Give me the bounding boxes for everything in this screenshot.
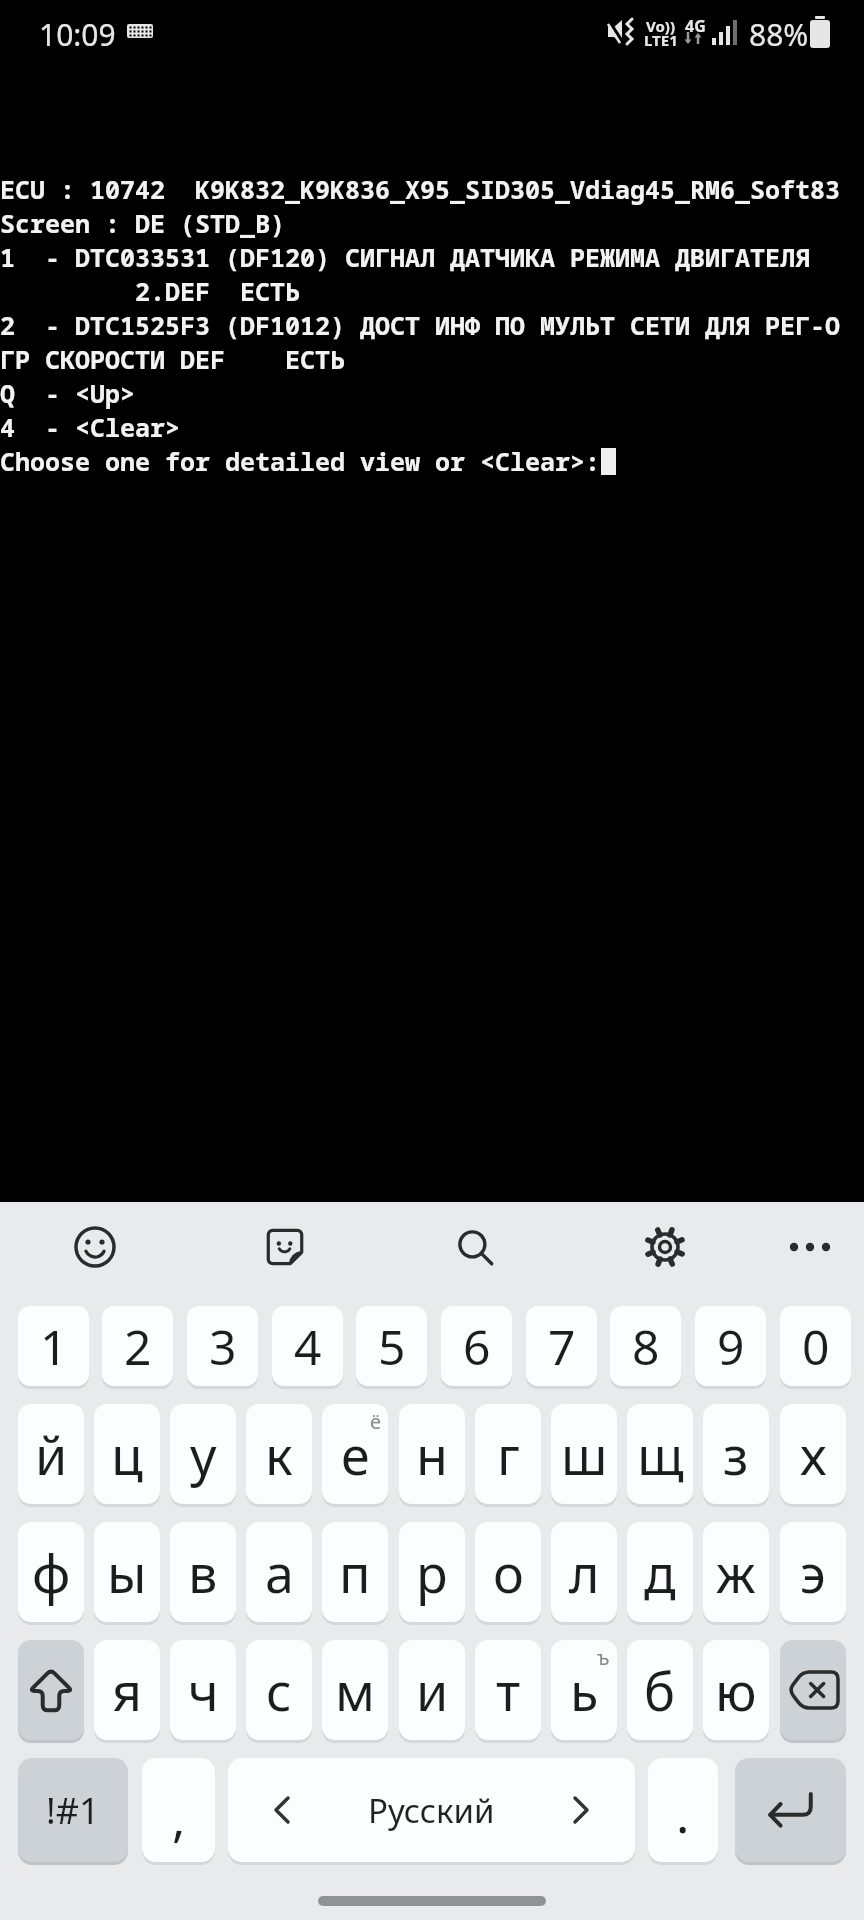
button[interactable]: к [246,1404,312,1504]
button[interactable]: т [475,1640,541,1740]
button[interactable] [735,1758,846,1862]
staticText: х [800,1419,827,1490]
button[interactable]: р [399,1522,465,1622]
staticText: Choose one for detailed view or <Clear>: [0,444,601,478]
button[interactable]: 1 [18,1306,89,1386]
button[interactable]: й [18,1404,84,1504]
staticText: и [416,1655,449,1726]
button[interactable]: 2 [102,1306,173,1386]
button[interactable]: ю [703,1640,769,1740]
button[interactable]: ж [703,1522,769,1622]
button[interactable]: щ [627,1404,693,1504]
staticText: е [341,1419,370,1490]
staticText: Vo)) [646,16,675,36]
button[interactable]: ц [94,1404,160,1504]
staticText: 2 - DTC1525F3 (DF1012) ДОСТ ИНФ ПО МУЛЬТ… [0,308,841,342]
staticText: м [335,1655,375,1726]
button[interactable]: з [703,1404,769,1504]
button[interactable] [263,1225,307,1269]
button[interactable]: п [322,1522,388,1622]
staticText: т [496,1655,521,1726]
button[interactable]: д [627,1522,693,1622]
staticText: Screen : DE (STD_B) [0,206,286,240]
staticText: 1 [40,1314,68,1379]
staticText: щ [637,1419,684,1490]
button[interactable]: ы [94,1522,160,1622]
staticText: 3 [209,1314,237,1379]
button[interactable]: л [551,1522,617,1622]
button[interactable] [780,1640,846,1740]
button[interactable]: ь [551,1640,617,1740]
button[interactable]: м [322,1640,388,1740]
staticText: й [35,1419,68,1490]
staticText: з [723,1419,749,1490]
button[interactable] [73,1225,117,1269]
staticText: ш [561,1419,608,1490]
staticText: ж [716,1537,756,1608]
button[interactable]: ш [551,1404,617,1504]
staticText: ч [188,1655,219,1726]
staticText: л [569,1537,600,1608]
button[interactable]: 0 [780,1306,851,1386]
button[interactable] [643,1225,687,1269]
button[interactable]: а [246,1522,312,1622]
staticText: 4 [294,1314,322,1379]
staticText: ь [570,1655,599,1726]
staticText: ы [107,1537,147,1608]
staticText: . [676,1780,690,1848]
staticText: ц [111,1419,143,1490]
staticText: б [644,1655,676,1726]
staticText: в [188,1537,218,1608]
staticText: 7 [548,1314,576,1379]
button[interactable]: 7 [526,1306,597,1386]
staticText: 88% [749,14,809,55]
button[interactable]: о [475,1522,541,1622]
button[interactable]: 8 [610,1306,681,1386]
button[interactable]: с [246,1640,312,1740]
staticText: н [416,1419,448,1490]
button[interactable]: б [627,1640,693,1740]
staticText: к [265,1419,293,1490]
button[interactable]: Русский [228,1758,635,1862]
staticText: с [266,1655,292,1726]
button[interactable]: н [399,1404,465,1504]
button[interactable]: г [475,1404,541,1504]
staticText: р [416,1537,448,1608]
button[interactable]: у [170,1404,236,1504]
button[interactable]: я [94,1640,160,1740]
button[interactable] [18,1640,84,1740]
button[interactable]: Русский [228,1758,635,1862]
button[interactable]: ф [18,1522,84,1622]
staticText: 2.DEF ЕСТЬ [0,274,301,308]
staticText: э [800,1537,826,1608]
staticText: ECU : 10742 K9K832_K9K836_X95_SID305_Vdi… [0,172,841,206]
staticText: 1 - DTC033531 (DF120) СИГНАЛ ДАТЧИКА РЕЖ… [0,240,811,274]
button[interactable]: !#1 [18,1758,128,1862]
button[interactable]: 6 [441,1306,512,1386]
button[interactable]: . [648,1758,718,1862]
staticText: 4G [685,15,706,37]
button[interactable] [788,1225,832,1269]
staticText: у [190,1419,217,1490]
staticText: п [339,1537,371,1608]
button[interactable]: 5 [356,1306,427,1386]
button[interactable]: ч [170,1640,236,1740]
button[interactable]: х [780,1404,846,1504]
button[interactable]: в [170,1522,236,1622]
staticText: 10:09 [39,14,116,55]
button[interactable] [453,1225,497,1269]
staticText: о [493,1537,524,1608]
button[interactable]: 9 [695,1306,766,1386]
button[interactable]: 3 [187,1306,258,1386]
staticText: ё [370,1408,382,1435]
button[interactable]: и [399,1640,465,1740]
button[interactable]: е [322,1404,388,1504]
staticText: ф [32,1537,71,1608]
button[interactable]: , [142,1758,215,1862]
staticText: 0 [802,1314,830,1379]
button[interactable]: э [780,1522,846,1622]
staticText: 5 [378,1314,406,1379]
button[interactable]: 4 [272,1306,343,1386]
staticText: Q - <Up> [0,376,136,410]
staticText: 6 [463,1314,491,1379]
